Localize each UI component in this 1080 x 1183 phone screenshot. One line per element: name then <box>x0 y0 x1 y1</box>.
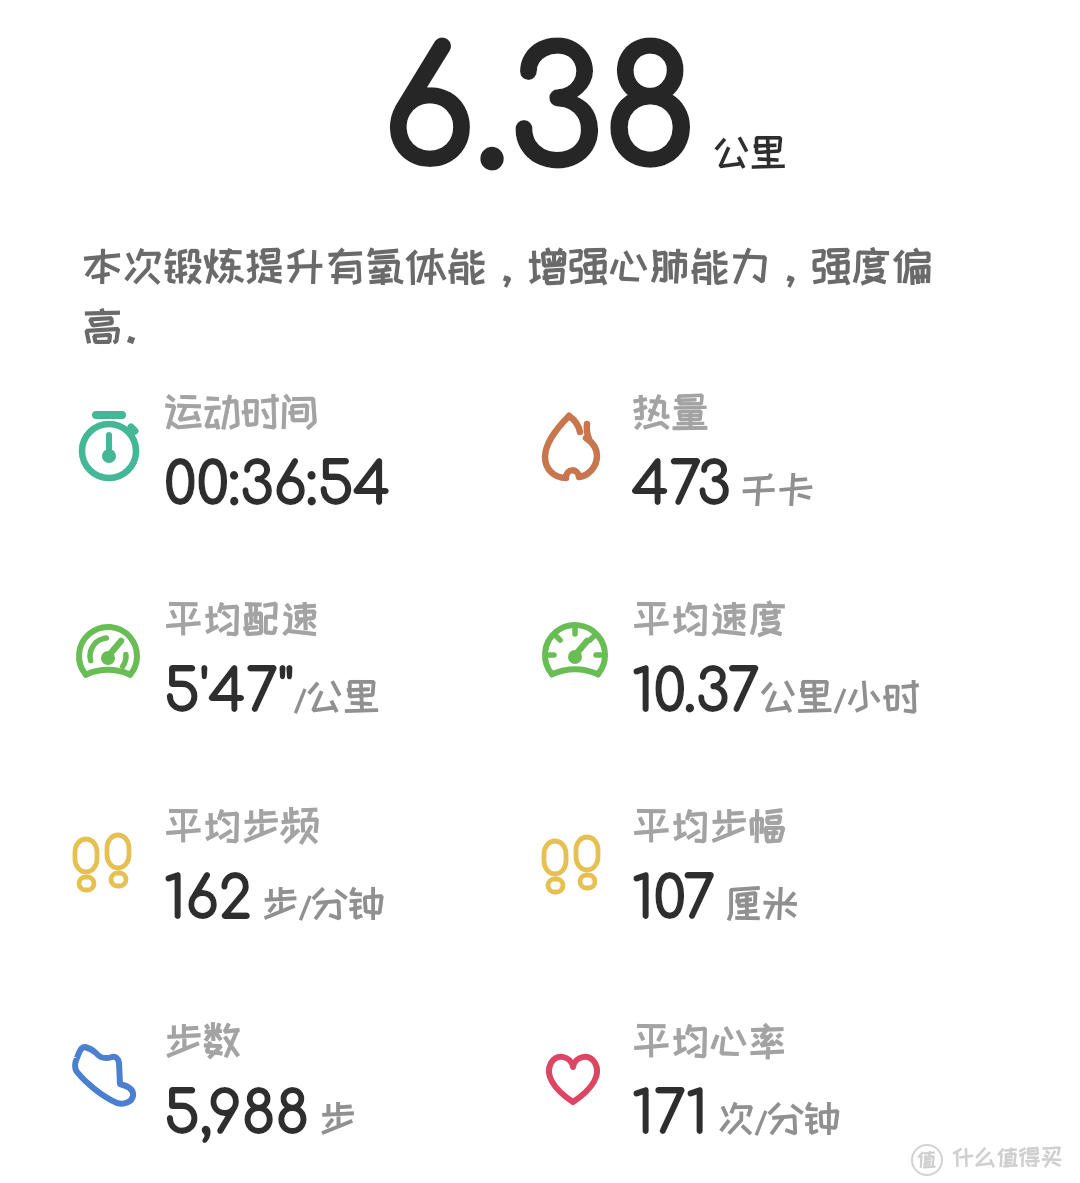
button[interactable]: 平均配速 <box>62 587 532 777</box>
staticText: 171 次/分钟 <box>632 1083 841 1147</box>
button[interactable]: 平均速度 <box>529 587 999 777</box>
button[interactable]: 步数 <box>61 1009 531 1183</box>
staticText: 00:36:54 <box>164 454 391 518</box>
staticText: 步数 <box>164 1019 242 1061</box>
staticText: 6.38 <box>382 24 698 202</box>
staticText: 平均配速 <box>164 597 319 639</box>
button[interactable]: 平均心率 <box>530 1009 1000 1183</box>
button[interactable]: 平均步频 <box>60 794 530 984</box>
staticText: 本次锻炼提升有氧体能，增强心肺能力，强度偏高。 <box>82 243 962 347</box>
button[interactable]: 运动时间 <box>63 380 533 570</box>
staticText: 运动时间 <box>164 390 319 432</box>
staticText: 平均心率 <box>632 1019 787 1061</box>
staticText: 107 厘米 <box>632 868 799 932</box>
staticText: 5,988 步 <box>164 1083 357 1147</box>
staticText: 473 千卡 <box>632 454 815 518</box>
staticText: 平均步幅 <box>632 804 787 846</box>
staticText: 热量 <box>632 390 710 432</box>
staticText: 值 <box>917 1149 937 1170</box>
staticText: 平均速度 <box>632 597 787 639</box>
staticText: 162 步/分钟 <box>164 868 385 932</box>
staticText: 平均步频 <box>164 804 319 846</box>
button[interactable]: 平均步幅 <box>529 794 999 984</box>
staticText: 5'47"/公里 <box>164 661 380 725</box>
staticText: 公里 <box>713 132 787 172</box>
button[interactable]: 热量 <box>529 380 999 570</box>
staticText: 10.37公里/小时 <box>632 661 920 725</box>
staticText: 什么值得买 <box>952 1145 1063 1169</box>
